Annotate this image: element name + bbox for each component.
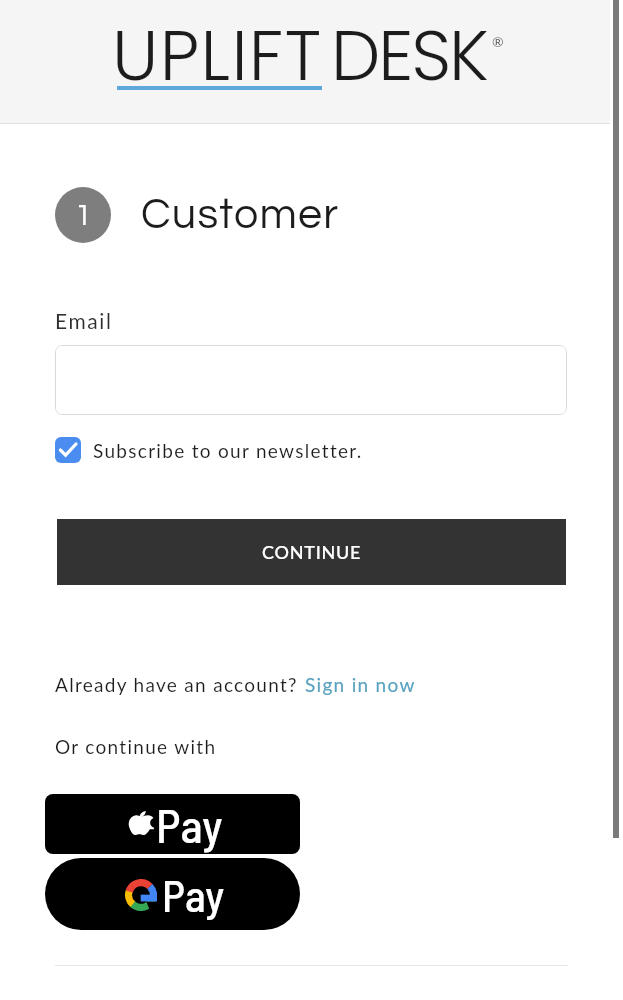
- staticText: 1: [75, 200, 92, 231]
- button[interactable]: Apple Pay: [45, 794, 300, 854]
- staticText: ®: [492, 33, 504, 50]
- staticText: Customer: [141, 193, 340, 237]
- button[interactable]: Sign in now: [305, 673, 416, 696]
- staticText: DESK: [331, 6, 487, 104]
- staticText: Subscribe to our newsletter.: [93, 439, 363, 462]
- staticText: CONTINUE: [262, 541, 362, 563]
- button[interactable]: CONTINUE: [57, 519, 566, 585]
- staticText: Email: [55, 308, 113, 333]
- staticText: Already have an account?: [55, 673, 305, 696]
- button[interactable]: Subscribe to our newsletter.: [55, 437, 363, 463]
- button[interactable]: Google Pay: [45, 858, 300, 930]
- staticText: Or continue with: [55, 735, 217, 758]
- staticText: Pay: [162, 868, 225, 921]
- staticText: UPLIFT: [112, 6, 323, 104]
- staticText: Pay: [156, 796, 223, 852]
- button[interactable]: Email input: [55, 345, 567, 415]
